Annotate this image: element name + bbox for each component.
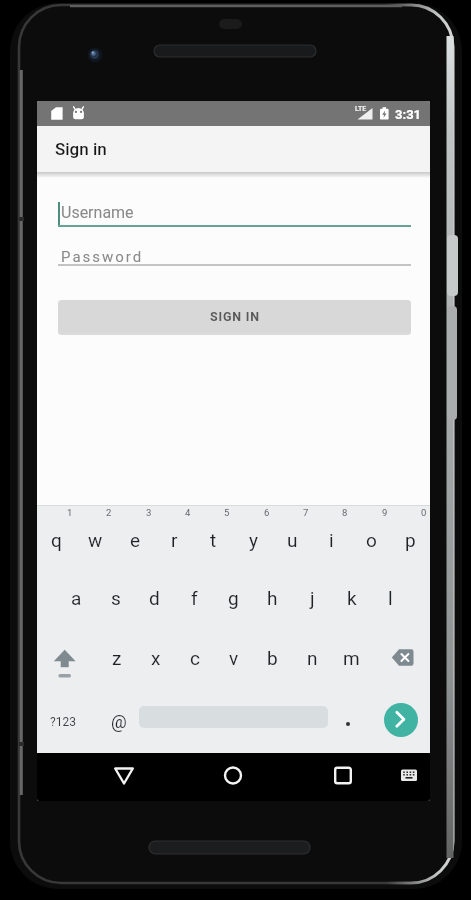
button[interactable] xyxy=(326,759,360,792)
staticText: h xyxy=(267,587,278,609)
staticText: y xyxy=(249,529,258,551)
button[interactable] xyxy=(47,643,85,675)
staticText: m xyxy=(343,647,360,669)
button[interactable]: x xyxy=(136,641,175,675)
button[interactable]: j xyxy=(293,581,332,615)
button[interactable]: @ xyxy=(99,705,138,739)
button[interactable] xyxy=(384,703,418,737)
button[interactable]: d xyxy=(135,581,174,615)
staticText: c xyxy=(190,647,200,669)
staticText: l xyxy=(388,587,393,609)
button[interactable]: y xyxy=(234,523,273,557)
button[interactable]: r xyxy=(155,523,194,557)
staticText: r xyxy=(171,529,178,551)
staticText: Password xyxy=(61,248,144,266)
staticText: f xyxy=(191,587,198,609)
staticText: p xyxy=(405,529,416,551)
staticText: 8 xyxy=(342,507,348,518)
button[interactable]: g xyxy=(214,581,253,615)
button[interactable]: u xyxy=(273,523,312,557)
button[interactable]: n xyxy=(293,641,332,675)
staticText: v xyxy=(229,647,239,669)
button[interactable]: i xyxy=(312,523,351,557)
staticText: 4 xyxy=(185,507,191,518)
button[interactable]: ?123 xyxy=(41,707,85,737)
button[interactable]: b xyxy=(253,641,292,675)
staticText: o xyxy=(366,529,377,551)
staticText: n xyxy=(307,647,318,669)
staticText: 7 xyxy=(303,507,309,518)
staticText: t xyxy=(210,529,217,551)
staticText: 3:31 xyxy=(395,107,422,122)
staticText: 2 xyxy=(106,507,112,518)
button[interactable] xyxy=(393,761,425,789)
staticText: x xyxy=(151,647,161,669)
staticText: g xyxy=(228,587,239,609)
button[interactable] xyxy=(216,759,250,792)
button[interactable]: k xyxy=(332,581,371,615)
staticText: 3 xyxy=(146,507,152,518)
staticText: @ xyxy=(111,712,127,733)
button[interactable]: w xyxy=(76,523,115,557)
staticText: b xyxy=(267,647,278,669)
button[interactable] xyxy=(107,759,141,792)
button[interactable]: o xyxy=(352,523,391,557)
button[interactable] xyxy=(333,704,363,734)
staticText: d xyxy=(149,587,160,609)
staticText: Username xyxy=(61,203,134,222)
staticText: s xyxy=(111,587,121,609)
button[interactable] xyxy=(58,197,411,227)
button[interactable] xyxy=(58,239,411,266)
staticText: j xyxy=(310,587,315,609)
staticText: 9 xyxy=(382,507,388,518)
staticText: SIGN IN xyxy=(210,309,260,324)
button[interactable]: q xyxy=(37,523,76,557)
button[interactable]: z xyxy=(97,641,136,675)
staticText: k xyxy=(347,587,357,609)
staticText: w xyxy=(88,529,103,551)
button[interactable]: m xyxy=(332,641,371,675)
button[interactable]: a xyxy=(57,581,96,615)
button[interactable]: v xyxy=(214,641,253,675)
button[interactable]: SIGN IN xyxy=(58,300,411,333)
button[interactable]: f xyxy=(175,581,214,615)
button[interactable]: t xyxy=(194,523,233,557)
staticText: e xyxy=(130,529,141,551)
staticText: LTE xyxy=(355,105,367,113)
staticText: Sign in xyxy=(55,139,107,159)
staticText: 5 xyxy=(224,507,230,518)
staticText: a xyxy=(71,587,82,609)
button[interactable]: p xyxy=(391,523,430,557)
staticText: i xyxy=(329,529,334,551)
staticText: z xyxy=(112,647,122,669)
staticText: q xyxy=(51,529,62,551)
staticText: 6 xyxy=(264,507,270,518)
button[interactable]: c xyxy=(175,641,214,675)
staticText: ?123 xyxy=(50,715,76,729)
button[interactable] xyxy=(387,643,423,675)
staticText: u xyxy=(287,529,298,551)
button[interactable]: e xyxy=(116,523,155,557)
staticText: 1 xyxy=(67,507,73,518)
button[interactable]: h xyxy=(253,581,292,615)
button[interactable]: l xyxy=(371,581,410,615)
staticText: 0 xyxy=(421,507,427,518)
button[interactable]: s xyxy=(96,581,135,615)
